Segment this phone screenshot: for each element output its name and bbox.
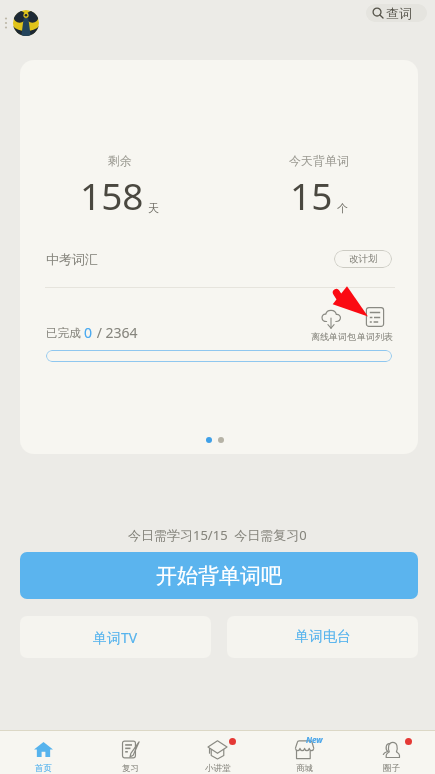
button[interactable]: 开始背单词吧 [20, 552, 418, 599]
button[interactable]: 离线单词包 [310, 307, 356, 342]
staticText: 个 [337, 201, 348, 215]
staticText: 今日需学习15/15 今日需复习0 [128, 526, 307, 544]
staticText: 天 [148, 201, 159, 215]
staticText: 158 [80, 170, 144, 220]
button[interactable]: 首页 [0, 731, 87, 774]
button[interactable]: Profile avatar [13, 10, 39, 36]
staticText: 剩余 [108, 153, 132, 168]
staticText: 离线单词包 [311, 331, 356, 342]
button[interactable]: 单词电台 [227, 616, 418, 658]
button[interactable]: New [261, 731, 348, 774]
staticText: 今天背单词 [289, 153, 349, 168]
staticText: New [306, 734, 323, 745]
staticText: 查词 [386, 5, 412, 21]
button[interactable]: 查词 [366, 4, 427, 22]
button[interactable]: 单词列表 [355, 307, 395, 342]
staticText: 复习 [122, 763, 139, 774]
staticText: 改计划 [349, 253, 378, 265]
staticText: 首页 [35, 763, 52, 774]
staticText: 0 [84, 323, 93, 342]
staticText: 单词TV [93, 628, 138, 647]
staticText: 单词电台 [295, 628, 351, 646]
staticText: / 2364 [93, 323, 138, 342]
staticText: 单词列表 [357, 331, 393, 342]
staticText: 中考词汇 [46, 251, 98, 267]
button[interactable]: 圈子 [348, 731, 435, 774]
button[interactable]: 改计划 [334, 250, 392, 268]
button[interactable]: 小讲堂 [174, 731, 261, 774]
staticText: 开始背单词吧 [156, 563, 282, 589]
button[interactable]: 单词TV [20, 616, 211, 658]
staticText: 圈子 [383, 763, 400, 774]
staticText: 小讲堂 [205, 763, 231, 774]
staticText: 已完成 [46, 326, 81, 340]
staticText: 商城 [296, 763, 313, 774]
staticText: 15 [290, 170, 333, 220]
button[interactable]: 复习 [87, 731, 174, 774]
